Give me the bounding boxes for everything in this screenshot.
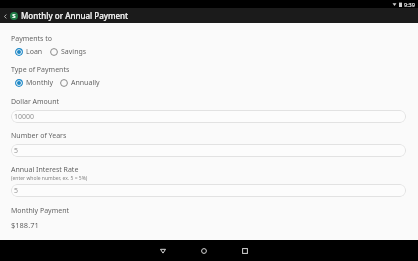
- button[interactable]: Back: [156, 244, 170, 258]
- button[interactable]: Annually: [59, 77, 101, 89]
- button[interactable]: 5: [11, 144, 406, 157]
- button[interactable]: 10000: [11, 110, 406, 123]
- staticText: Monthly: [26, 78, 54, 88]
- staticText: Loan: [26, 47, 43, 57]
- staticText: S: [12, 12, 16, 20]
- staticText: Dollar Amount: [11, 97, 60, 107]
- staticText: 5: [14, 146, 19, 156]
- staticText: Monthly or Annual Payment: [21, 10, 129, 21]
- staticText: $188.71: [11, 220, 39, 230]
- staticText: Payments to: [11, 34, 53, 44]
- staticText: Monthly Payment: [11, 206, 70, 216]
- staticText: Type of Payments: [11, 65, 70, 75]
- button[interactable]: Loan: [14, 46, 44, 58]
- button[interactable]: App icon: [10, 12, 18, 20]
- staticText: Annual Interest Rate: [11, 165, 79, 175]
- staticText: Savings: [61, 47, 87, 57]
- staticText: Annually: [71, 78, 100, 88]
- staticText: Number of Years: [11, 131, 67, 141]
- button[interactable]: Home: [197, 244, 211, 258]
- button[interactable]: Savings: [49, 46, 88, 58]
- staticText: (enter whole number, ex. 5 = 5%): [11, 175, 88, 182]
- staticText: 9:39: [404, 1, 415, 8]
- staticText: 5: [14, 186, 19, 196]
- button[interactable]: Monthly: [14, 77, 55, 89]
- staticText: 10000: [14, 112, 35, 122]
- button[interactable]: 5: [11, 184, 406, 197]
- button[interactable]: Recent apps: [238, 244, 252, 258]
- button[interactable]: Back: [1, 12, 9, 20]
